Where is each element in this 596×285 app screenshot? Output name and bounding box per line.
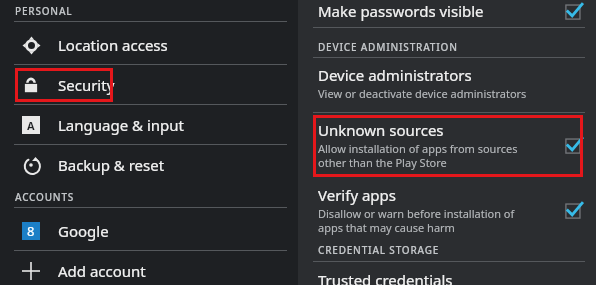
staticText: CREDENTIAL STORAGE [318, 243, 440, 257]
button[interactable]: Backup & reset [0, 146, 298, 184]
button[interactable]: Make passwords visible [298, 0, 596, 22]
staticText: Google [58, 221, 109, 241]
button[interactable]: Verify apps [298, 185, 596, 235]
staticText: View or deactivate device administrators [318, 86, 527, 101]
staticText: PERSONAL [15, 4, 73, 18]
button[interactable]: Trusted credentials [318, 270, 453, 285]
staticText: Security [58, 75, 115, 95]
button[interactable]: Security [0, 66, 298, 104]
button[interactable]: Location access [0, 26, 298, 64]
button[interactable]: Unknown sources [298, 120, 596, 170]
button[interactable]: 8 [0, 212, 298, 250]
button[interactable]: Device administrators [298, 65, 596, 101]
staticText: 8 [27, 222, 35, 240]
staticText: Verify apps [318, 185, 396, 205]
staticText: Allow installation of apps from sources … [318, 141, 518, 170]
button[interactable]: A [0, 106, 298, 144]
staticText: Disallow or warn before installation of … [318, 206, 515, 235]
staticText: Location access [58, 35, 168, 55]
staticText: Add account [58, 261, 146, 281]
staticText: Backup & reset [58, 155, 165, 175]
staticText: Device administrators [318, 65, 472, 85]
button[interactable]: Add account [0, 252, 298, 285]
other: Checked [564, 201, 583, 220]
staticText: Make passwords visible [318, 1, 564, 21]
staticText: Language & input [58, 115, 184, 135]
other: Checked [564, 2, 583, 21]
staticText: A [27, 118, 35, 133]
staticText: ACCOUNTS [15, 190, 75, 204]
staticText: DEVICE ADMINISTRATION [318, 40, 458, 54]
other: Checked [564, 136, 583, 155]
staticText: Unknown sources [318, 120, 444, 140]
